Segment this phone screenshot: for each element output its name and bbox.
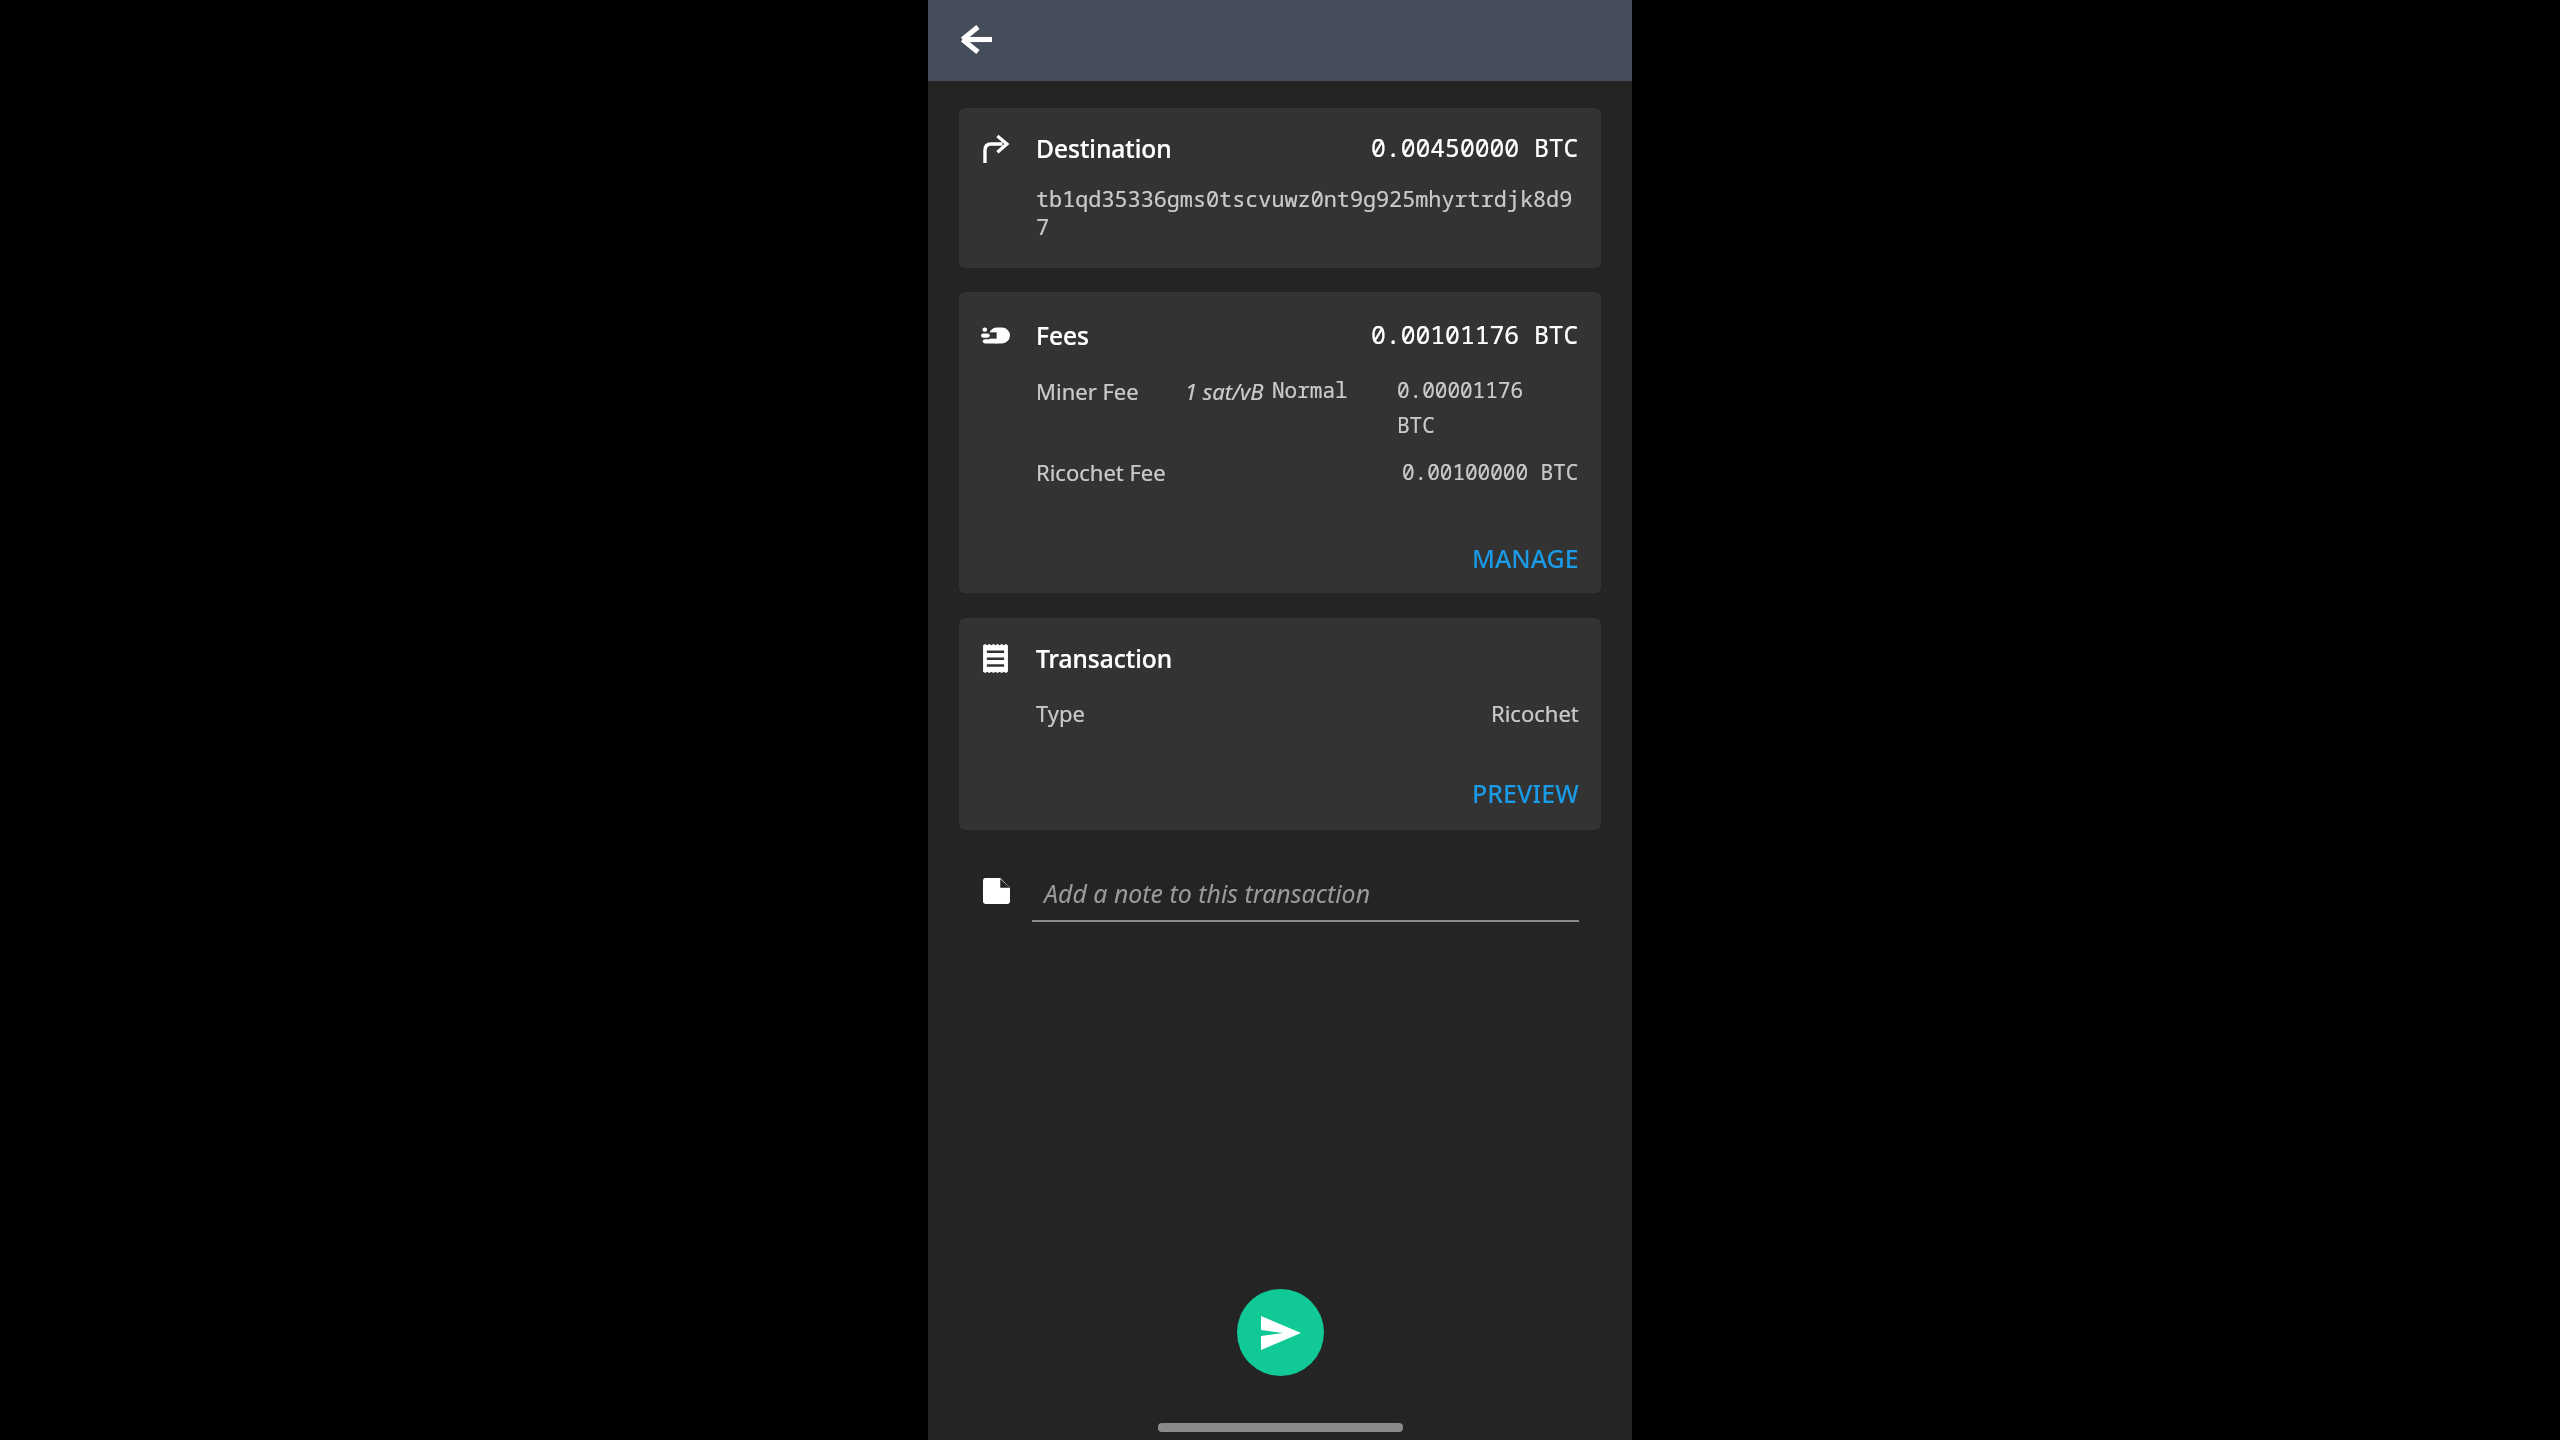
- staticText: Normal: [1272, 376, 1348, 405]
- staticText: 0.00001176 BTC: [1397, 376, 1579, 439]
- staticText: 0.00101176 BTC: [1371, 318, 1579, 352]
- staticText: 0.00450000 BTC: [1371, 131, 1579, 165]
- staticText: Add a note to this transaction: [1044, 876, 1371, 910]
- button[interactable]: MANAGE: [1458, 531, 1593, 585]
- staticText: Ricochet Fee: [1036, 457, 1166, 487]
- staticText: Fees: [1036, 319, 1089, 352]
- button[interactable]: Add a note to this transaction: [928, 876, 1632, 922]
- staticText: Miner Fee: [1036, 376, 1185, 406]
- staticText: PREVIEW: [1472, 776, 1579, 810]
- staticText: 1 sat/vB: [1185, 376, 1264, 406]
- staticText: Transaction: [1036, 642, 1173, 675]
- button[interactable]: Send transaction: [1237, 1289, 1324, 1376]
- staticText: 0.00100000 BTC: [1402, 458, 1579, 487]
- button[interactable]: Back: [945, 10, 1007, 72]
- staticText: MANAGE: [1472, 541, 1579, 575]
- staticText: Destination: [1036, 132, 1172, 165]
- staticText: tb1qd35336gms0tscvuwz0nt9g925mhyrtrdjk8d…: [1036, 184, 1579, 241]
- staticText: Ricochet: [1491, 698, 1579, 728]
- staticText: Type: [1036, 698, 1085, 728]
- button[interactable]: PREVIEW: [1458, 766, 1593, 820]
